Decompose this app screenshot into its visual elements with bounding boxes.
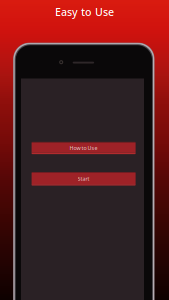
button[interactable]: Start — [32, 172, 136, 185]
staticText: Start — [78, 175, 90, 182]
staticText: Easy to Use — [55, 5, 114, 19]
button[interactable]: How to Use — [32, 142, 136, 154]
staticText: How to Use — [70, 144, 98, 151]
